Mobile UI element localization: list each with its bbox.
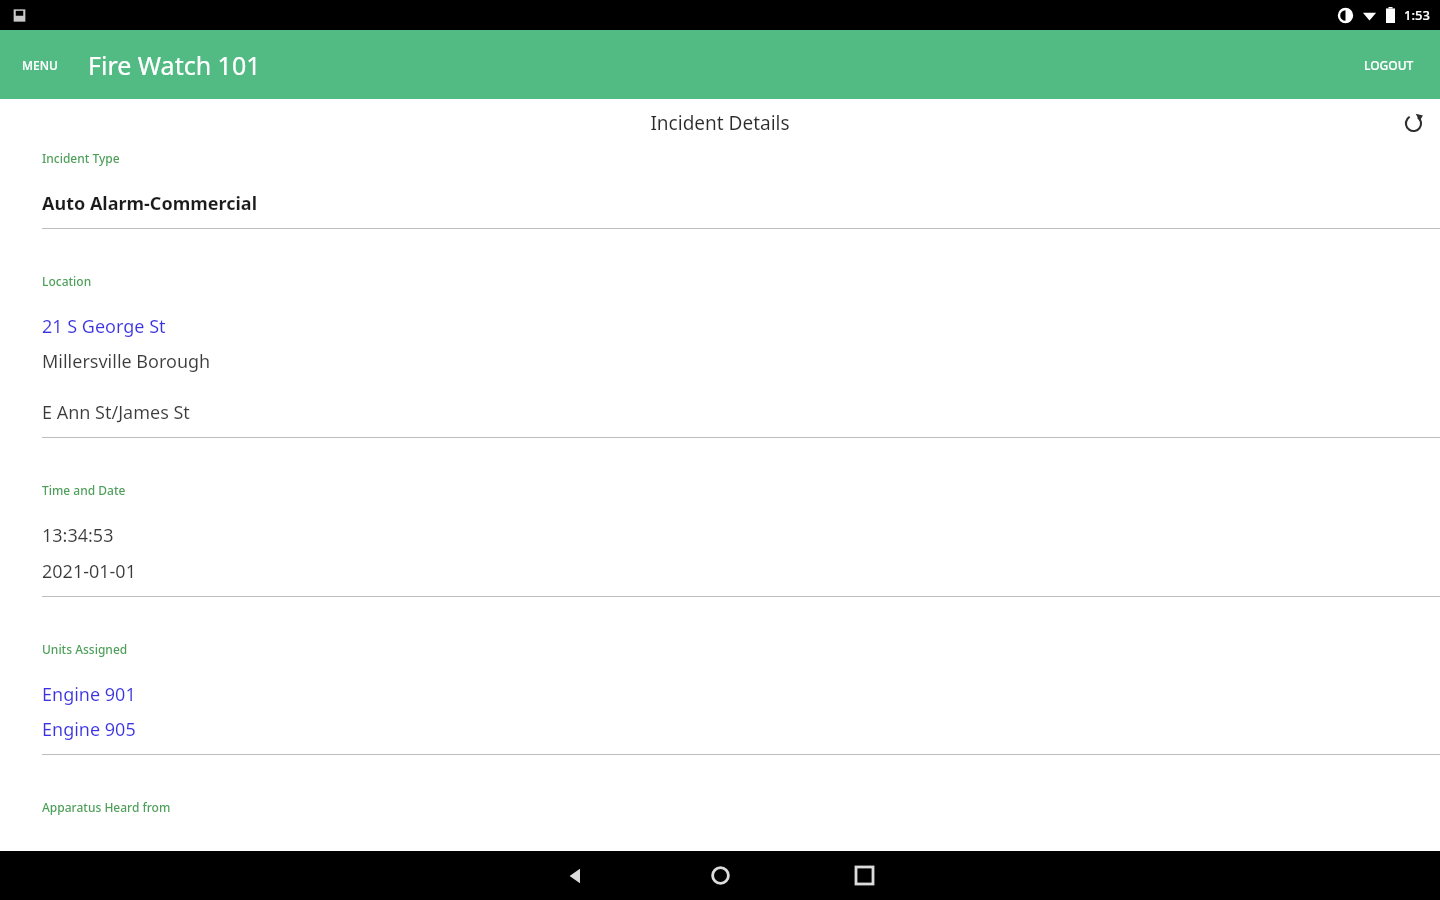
staticText: Millersville Borough (42, 349, 1440, 374)
staticText: MENU (22, 57, 58, 73)
staticText: Incident Details (0, 110, 1440, 136)
button[interactable]: Engine 905 (42, 717, 1440, 742)
button[interactable]: MENU (0, 47, 72, 83)
button[interactable]: 21 S George St (42, 314, 1440, 339)
staticText: Time and Date (42, 482, 126, 498)
staticText: LOGOUT (1364, 57, 1414, 73)
button[interactable]: LOGOUT (1338, 45, 1440, 85)
button[interactable]: Refresh (1394, 104, 1432, 142)
staticText: Apparatus Heard from (42, 799, 171, 815)
staticText: 2021-01-01 (42, 559, 1440, 584)
staticText: Location (42, 273, 92, 289)
button[interactable]: Home (648, 851, 792, 900)
staticText: 1:53 (1404, 6, 1430, 24)
button[interactable]: Back (504, 851, 648, 900)
staticText: E Ann St/James St (42, 400, 1440, 425)
button[interactable]: Engine 901 (42, 682, 1440, 707)
staticText: Fire Watch 101 (88, 48, 261, 82)
staticText: Auto Alarm-Commercial (42, 191, 1440, 216)
staticText: Incident Type (42, 150, 120, 166)
staticText: Units Assigned (42, 641, 128, 657)
button[interactable]: Recent apps (792, 851, 936, 900)
staticText: 13:34:53 (42, 523, 1440, 548)
